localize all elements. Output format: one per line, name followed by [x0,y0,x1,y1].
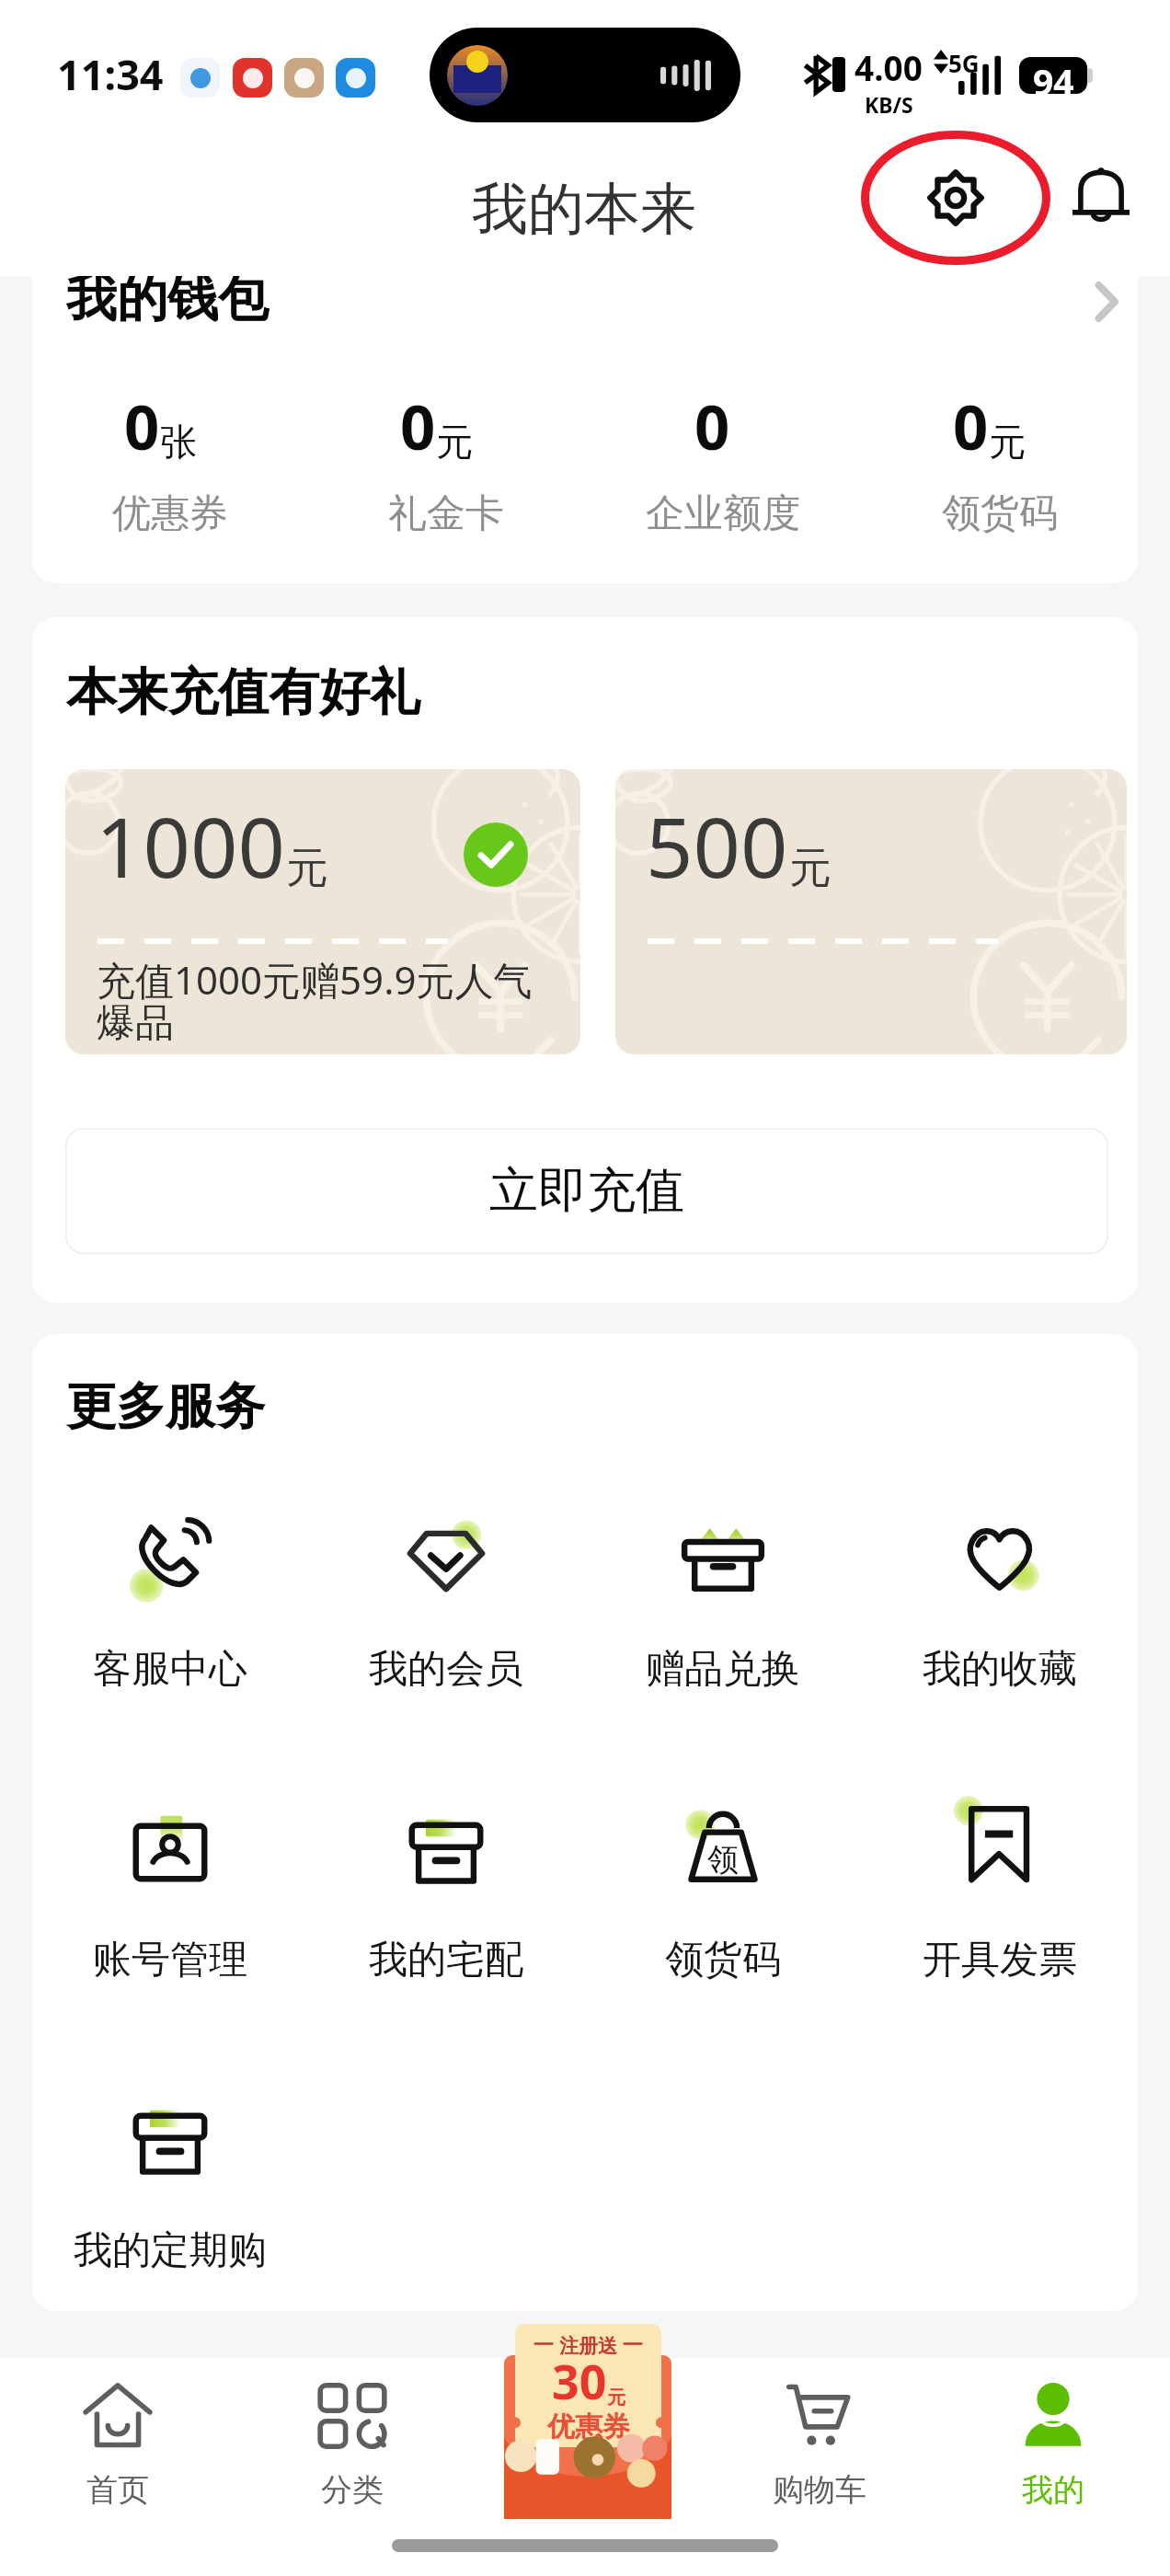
staticText: 我的收藏 [923,1645,1077,1694]
staticText: 500 [646,789,788,903]
staticText: 张 [160,419,197,465]
staticText: 优惠券 [547,2409,630,2444]
staticText: 立即充值 [489,1160,684,1222]
staticText: 30 [552,2348,607,2413]
staticText: 我的 [1022,2470,1084,2510]
staticText: 我的宅配 [369,1936,523,1984]
button[interactable]: Promotion [504,2355,671,2519]
staticText: 赠品兑换 [646,1645,800,1694]
staticText: 4.00 [855,44,923,90]
button[interactable]: 我的收藏 [861,1516,1138,1694]
staticText: 元 [789,842,832,895]
staticText: 领货码 [942,489,1058,538]
staticText: 首页 [86,2470,149,2510]
staticText: 5G [948,47,980,79]
button[interactable]: 客服中心 [32,1516,308,1694]
staticText: 企业额度 [646,489,800,538]
staticText: 注册送 [559,2334,617,2358]
staticText: 购物车 [773,2470,866,2510]
staticText: 本来充值有好礼 [66,661,420,724]
staticText: 我的会员 [369,1645,523,1694]
staticText: 元 [436,419,473,465]
staticText: 我的定期购 [74,2226,267,2275]
button[interactable]: 我的 [936,2358,1170,2576]
staticText: 0 [124,384,160,467]
button[interactable]: 我的宅配 [308,1807,584,1984]
button[interactable]: 立即充值 [65,1128,1108,1254]
staticText: 元 [286,842,328,895]
staticText: 1000 [96,789,285,903]
button[interactable]: 赠品兑换 [584,1516,861,1694]
staticText: 元 [989,419,1026,465]
staticText: 我的本来 [472,174,696,245]
staticText: 账号管理 [93,1936,247,1984]
button[interactable]: 0 [861,384,1138,538]
staticText: 领 [707,1840,739,1880]
staticText: 0 [694,384,730,467]
staticText: 充值1000元赠59.9元人气爆品 [97,953,556,1047]
staticText: KB/S [865,90,913,119]
button[interactable]: 我的会员 [308,1516,584,1694]
staticText: 11:34 [57,46,164,102]
button[interactable]: 0 [32,384,308,538]
staticText: 礼金卡 [388,489,504,538]
button[interactable]: 账号管理 [32,1807,308,1984]
staticText: 分类 [321,2470,384,2510]
button[interactable]: 购物车 [703,2358,936,2576]
staticText: 客服中心 [93,1645,247,1694]
staticText: 开具发票 [923,1936,1077,1984]
button[interactable]: 0 [308,384,584,538]
staticText: 领货码 [665,1936,781,1984]
button[interactable]: 0 [584,384,861,538]
staticText: 我的钱包 [66,276,269,330]
button[interactable]: 1000 [65,769,580,1054]
button[interactable]: Notifications [1050,145,1152,247]
staticText: 更多服务 [66,1375,265,1438]
button[interactable]: 500 [615,769,1127,1054]
button[interactable]: Settings [861,131,1050,265]
button[interactable]: 首页 [0,2358,235,2576]
staticText: 0 [400,384,436,467]
staticText: 元 [607,2386,625,2409]
button[interactable]: 领 [584,1807,861,1984]
button[interactable]: 分类 [235,2358,469,2576]
staticText: 0 [953,384,989,467]
staticText: 94 [1033,57,1074,94]
staticText: 优惠券 [112,489,228,538]
button[interactable]: 开具发票 [861,1807,1138,1984]
button[interactable]: 我的定期购 [32,2098,308,2275]
button[interactable]: 我的钱包 [32,276,1138,583]
